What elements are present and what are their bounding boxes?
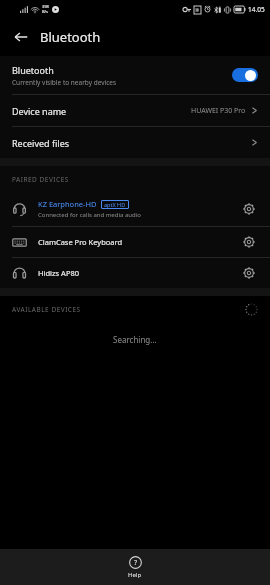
button[interactable]: Device settings for ClamCase Pro Keyboar… [236, 229, 262, 255]
button[interactable]: Hidizs AP80 [0, 258, 270, 288]
staticText: Searching... [113, 334, 157, 345]
staticText: 14.05 [248, 5, 265, 14]
staticText: Connected for calls and media audio [38, 211, 141, 219]
staticText: B/s [42, 9, 49, 14]
staticText: Bluetooth [40, 28, 101, 46]
staticText: PAIRED DEVICES [12, 175, 69, 184]
button[interactable]: Back [8, 24, 34, 50]
staticText: Device name [12, 105, 191, 117]
button[interactable]: Device settings for Hidizs AP80 [236, 260, 262, 286]
staticText: KZ Earphone-HD [38, 199, 97, 209]
staticText: AVAILABLE DEVICES [12, 305, 81, 314]
staticText: Received files [12, 137, 251, 149]
staticText: Bluetooth [12, 64, 54, 76]
button[interactable]: Bluetooth [0, 56, 270, 94]
staticText: 398 [42, 4, 49, 9]
button[interactable]: KZ Earphone-HD [0, 192, 270, 226]
staticText: Hidizs AP80 [38, 268, 80, 278]
staticText: Help [128, 571, 142, 579]
button[interactable]: Bluetooth toggle [232, 68, 258, 82]
button[interactable]: Device settings for KZ Earphone-HD [236, 196, 262, 222]
button[interactable]: Received files [0, 127, 270, 158]
button[interactable]: ClamCase Pro Keyboard [0, 227, 270, 257]
button[interactable]: Device name [0, 95, 270, 126]
staticText: HUAWEI P30 Pro [191, 106, 246, 116]
staticText: ? [134, 558, 138, 568]
staticText: aptX HD [104, 201, 126, 208]
button[interactable]: Help [0, 549, 270, 585]
staticText: Currently visible to nearby devices [12, 78, 117, 87]
staticText: ClamCase Pro Keyboard [38, 237, 123, 247]
